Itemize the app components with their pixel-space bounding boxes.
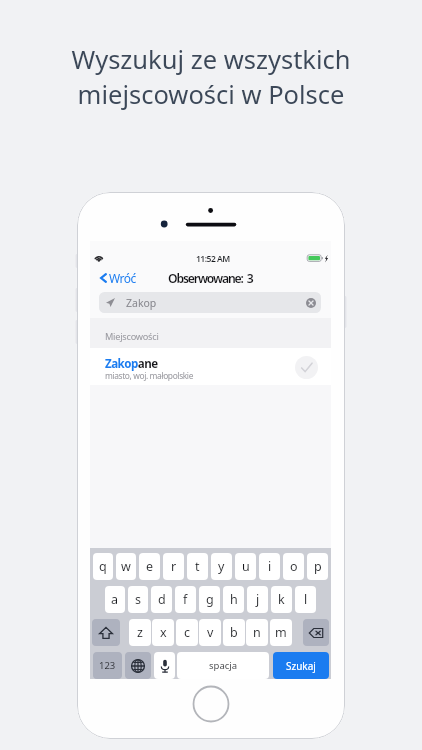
staticText: Wróć [109, 270, 136, 286]
staticText: Szukaj [286, 659, 316, 673]
staticText: Zakopane [105, 356, 158, 372]
staticText: e [146, 558, 154, 575]
button[interactable]: g [199, 586, 220, 613]
button[interactable]: v [199, 619, 221, 646]
button[interactable]: shift [92, 619, 120, 646]
staticText: miasto, woj. małopolskie [105, 370, 194, 381]
button[interactable]: Wyczyść [306, 298, 316, 308]
staticText: c [184, 624, 191, 641]
staticText: t [195, 558, 200, 575]
staticText: u [242, 558, 250, 575]
button[interactable]: mic [154, 652, 175, 679]
button[interactable]: t [187, 553, 208, 580]
staticText: Wyszukuj ze wszystkich miejscowości w Po… [0, 42, 422, 111]
button[interactable]: Zakop [99, 292, 321, 313]
button[interactable]: s [128, 586, 148, 613]
button[interactable]: j [247, 586, 268, 613]
button[interactable]: r [163, 553, 184, 580]
button[interactable]: m [270, 619, 292, 646]
staticText: k [278, 591, 285, 608]
button[interactable]: spacja [177, 652, 269, 679]
button[interactable]: w [116, 553, 136, 580]
button[interactable]: q [93, 553, 113, 580]
button[interactable]: u [235, 553, 256, 580]
button[interactable]: Szukaj [273, 652, 329, 679]
staticText: n [253, 624, 261, 641]
staticText: p [314, 558, 322, 575]
button[interactable]: i [259, 553, 280, 580]
staticText: a [111, 591, 119, 608]
staticText: v [207, 624, 214, 641]
button[interactable]: n [246, 619, 268, 646]
button[interactable]: p [307, 553, 328, 580]
button[interactable]: back [303, 619, 329, 646]
staticText: f [183, 591, 188, 608]
staticText: z [137, 624, 143, 641]
staticText: q [99, 558, 107, 575]
button[interactable]: d [151, 586, 172, 613]
button[interactable]: e [139, 553, 160, 580]
button[interactable]: h [223, 586, 244, 613]
button[interactable]: o [283, 553, 304, 580]
button[interactable]: y [211, 553, 232, 580]
button[interactable]: Zakopane [90, 348, 331, 385]
button[interactable]: c [176, 619, 198, 646]
staticText: d [158, 591, 166, 608]
staticText: j [256, 591, 260, 608]
button[interactable]: globe [125, 652, 151, 679]
staticText: m [275, 624, 287, 641]
staticText: i [268, 558, 272, 575]
button[interactable]: 123 [93, 652, 122, 679]
staticText: x [160, 624, 167, 641]
staticText: r [171, 558, 177, 575]
staticText: Obserwowane: 3 [168, 270, 253, 287]
button[interactable]: a [105, 586, 125, 613]
button[interactable]: Obserwowane [295, 356, 318, 379]
staticText: l [304, 591, 308, 608]
button[interactable]: x [152, 619, 174, 646]
staticText: w [121, 558, 131, 575]
staticText: 11:52 AM [196, 253, 230, 265]
staticText: Zakop [126, 296, 157, 310]
staticText: Miejscowości [105, 330, 159, 343]
staticText: spacja [209, 659, 238, 672]
staticText: s [135, 591, 141, 608]
staticText: h [230, 591, 238, 608]
button[interactable]: z [129, 619, 151, 646]
staticText: o [290, 558, 298, 575]
button[interactable]: b [223, 619, 245, 646]
staticText: 123 [99, 659, 116, 672]
staticText: g [206, 591, 214, 608]
button[interactable]: Wróć [100, 265, 136, 288]
button[interactable]: f [175, 586, 196, 613]
button[interactable]: l [295, 586, 316, 613]
staticText: b [230, 624, 238, 641]
staticText: y [218, 558, 225, 575]
button[interactable]: k [271, 586, 292, 613]
